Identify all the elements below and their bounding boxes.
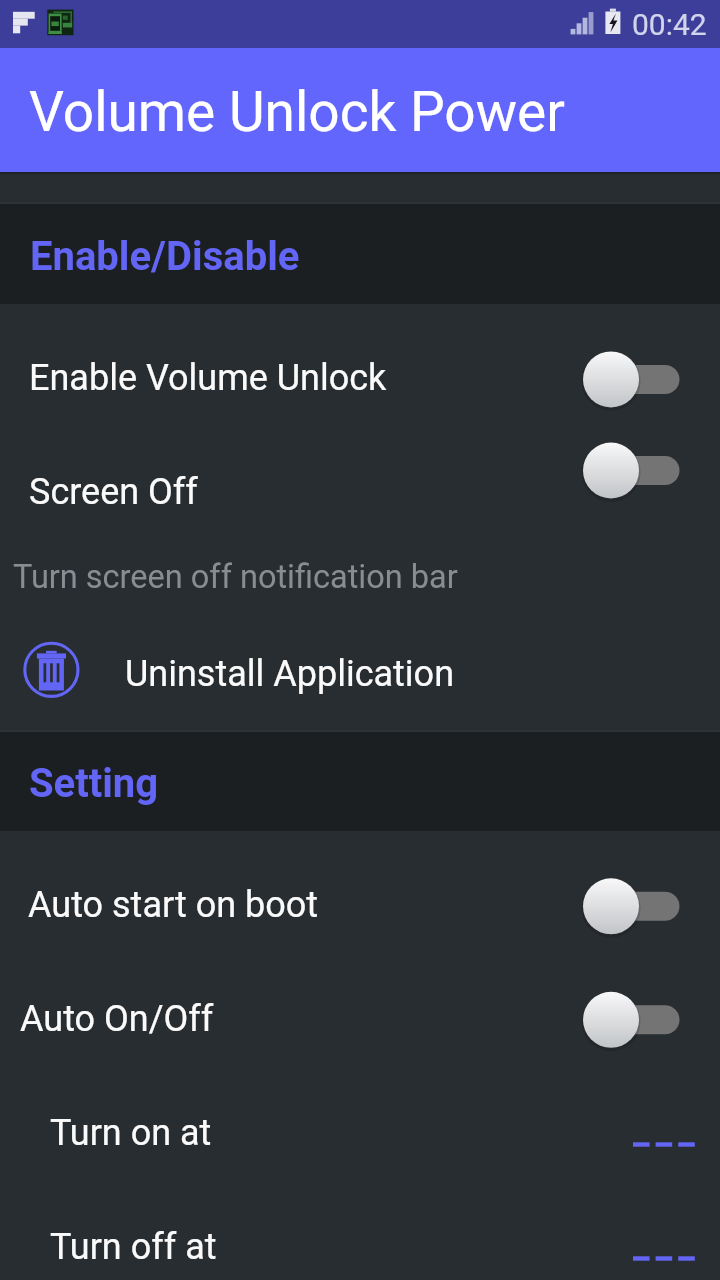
staticText: Turn off at [50, 1226, 217, 1268]
other: Uninstall Application [0, 626, 720, 716]
button[interactable]: Screen Off [0, 437, 720, 626]
staticText: Uninstall Application [125, 653, 455, 695]
staticText: Turn screen off notification bar [13, 558, 458, 596]
staticText: Auto On/Off [20, 998, 214, 1040]
button[interactable]: Auto On/Off [0, 964, 720, 1078]
staticText: 00:42 [632, 7, 707, 42]
staticText: Enable Volume Unlock [29, 357, 387, 399]
staticText: Setting [29, 760, 159, 807]
button[interactable]: Uninstall Application [0, 626, 720, 716]
staticText: Auto start on boot [28, 884, 319, 926]
button[interactable]: Turn off at [0, 1192, 720, 1280]
staticText: Enable/Disable [30, 233, 300, 280]
staticText: Volume Unlock Power [29, 80, 565, 144]
button[interactable]: Auto start on boot [0, 850, 720, 964]
button[interactable]: Enable Volume Unlock [0, 323, 720, 437]
staticText: Turn on at [50, 1112, 212, 1154]
staticText: Screen Off [29, 471, 198, 513]
button[interactable]: Turn on at [0, 1078, 720, 1192]
